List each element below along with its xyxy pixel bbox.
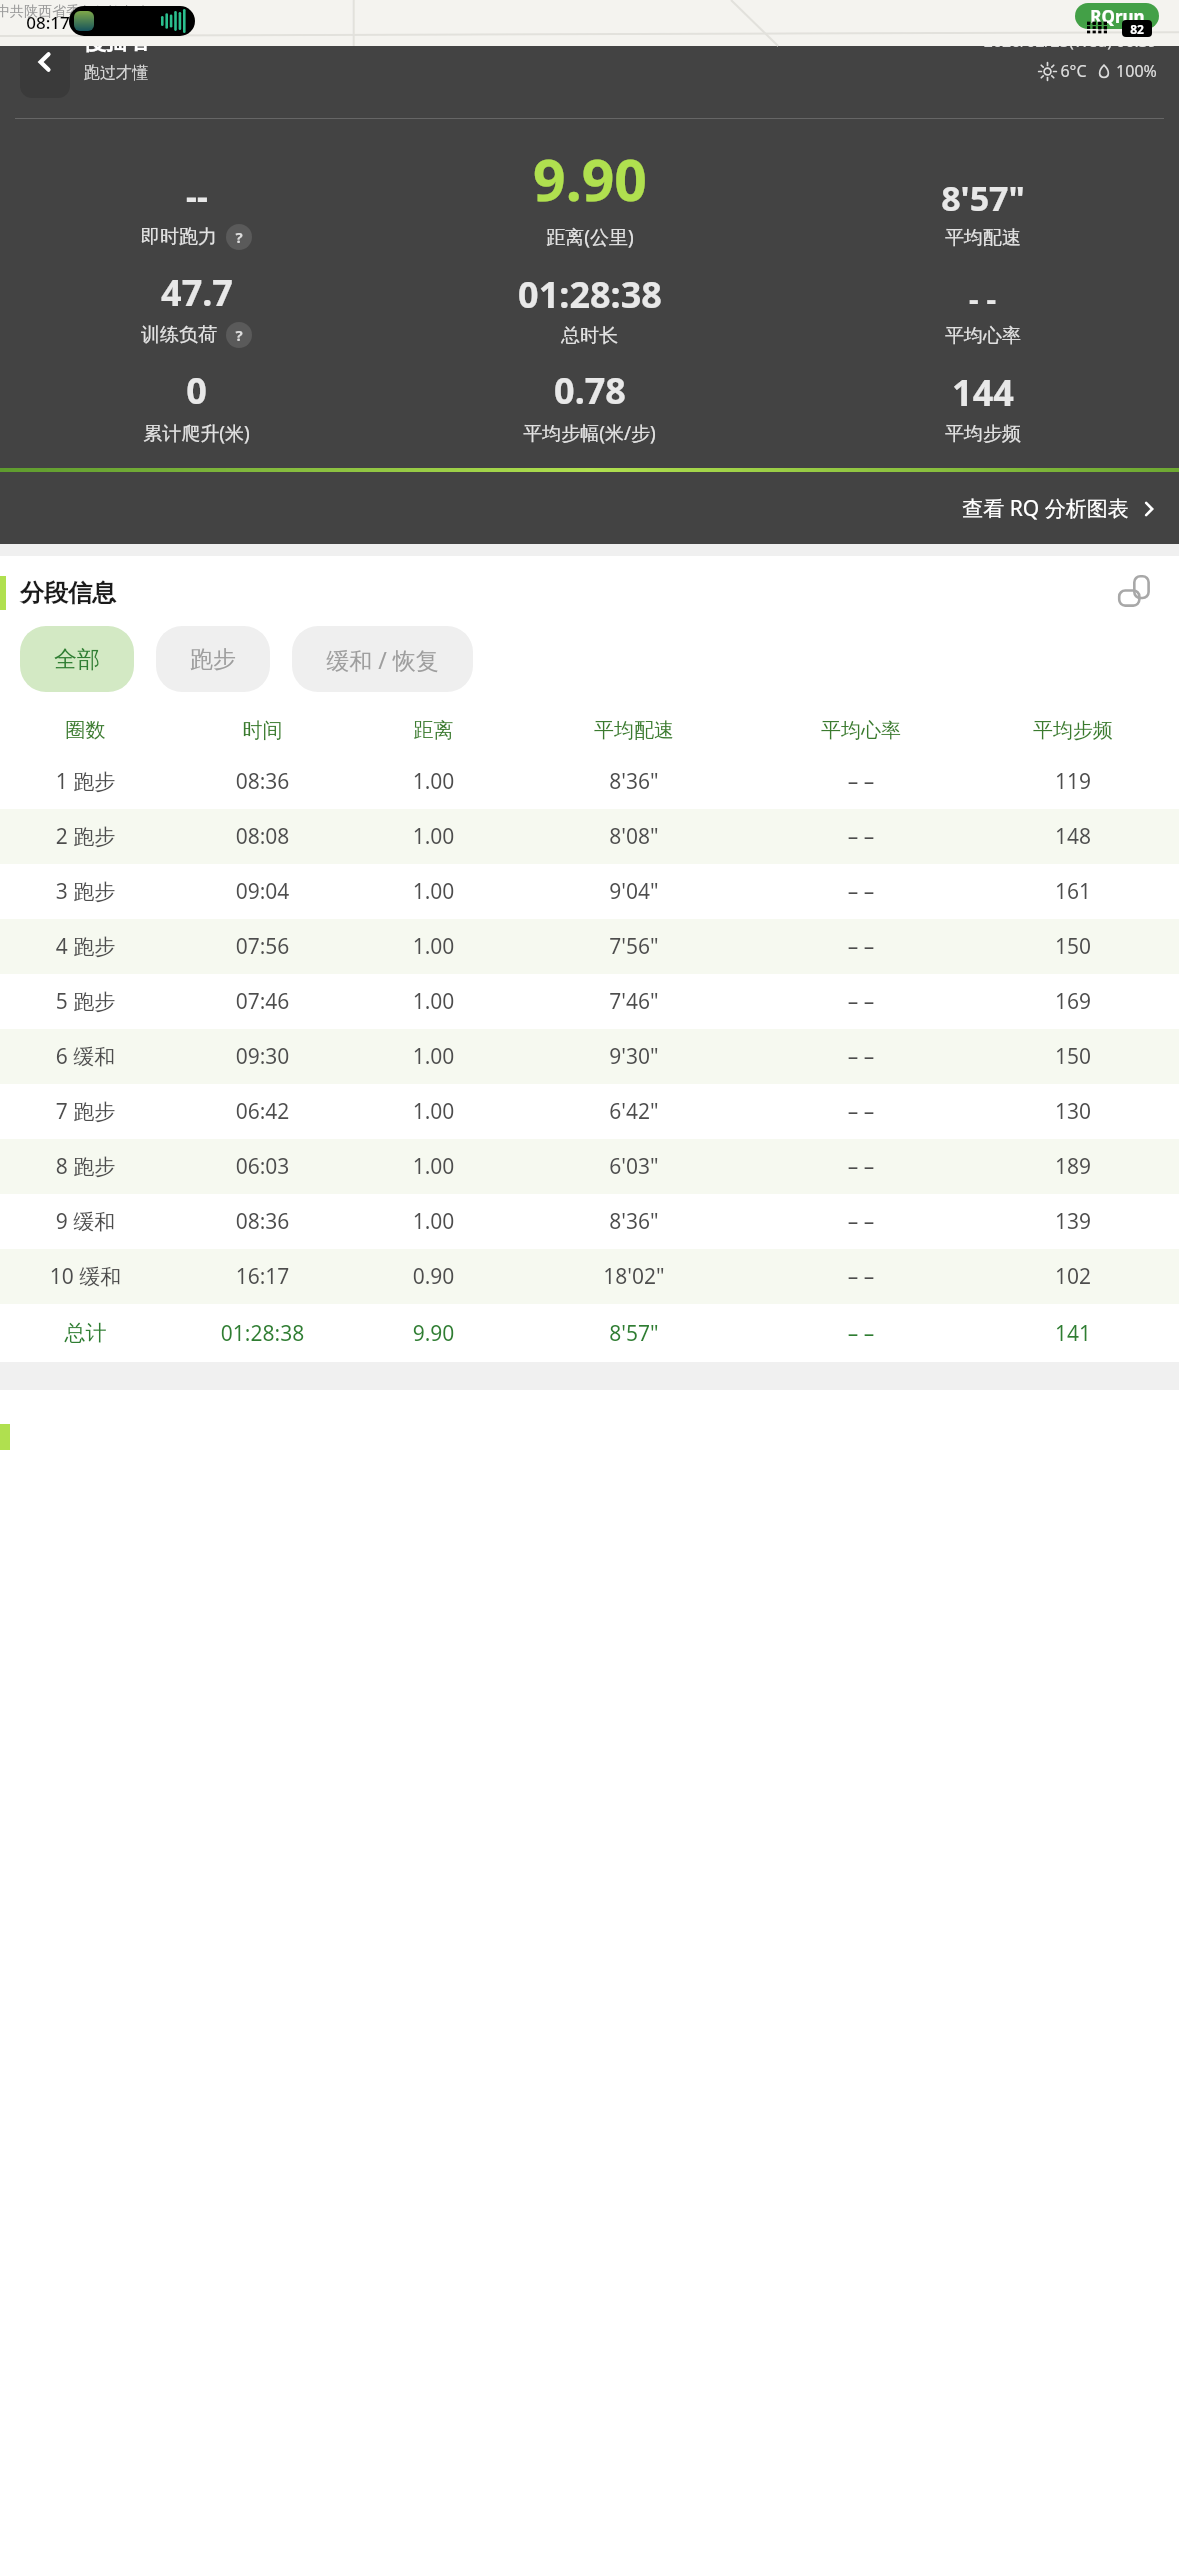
staticText: 0.78 [554, 366, 626, 415]
staticText: 5 跑步 [0, 987, 171, 1016]
button[interactable]: 5 跑步 [0, 974, 1179, 1029]
staticText: 1.00 [354, 1042, 513, 1071]
staticText: 1.00 [354, 822, 513, 851]
staticText: 6'03" [513, 1152, 755, 1181]
staticText: 18'02" [513, 1262, 755, 1291]
staticText: ? [235, 227, 243, 247]
staticText: 1 跑步 [0, 767, 171, 796]
staticText: 平均配速 [513, 718, 755, 743]
staticText: 130 [967, 1097, 1179, 1126]
staticText: 分段信息 [20, 578, 116, 608]
staticText: 4 跑步 [0, 932, 171, 961]
button[interactable]: 8 跑步 [0, 1139, 1179, 1194]
button[interactable]: Rotate screen [1115, 572, 1157, 614]
staticText: 8'57" [513, 1319, 755, 1348]
staticText: 1.00 [354, 1097, 513, 1126]
button[interactable]: 缓和 / 恢复 [292, 626, 473, 692]
staticText: 6°C [1060, 60, 1087, 82]
staticText: 6'42" [513, 1097, 755, 1126]
button[interactable]: Help [226, 322, 252, 348]
staticText: 总时长 [561, 324, 618, 348]
button[interactable]: 10 缓和 [0, 1249, 1179, 1304]
button[interactable]: Now playing [69, 6, 195, 36]
staticText: 累计爬升(米) [143, 420, 250, 446]
staticText: 8'36" [513, 767, 755, 796]
staticText: 139 [967, 1207, 1179, 1236]
staticText: 7'56" [513, 932, 755, 961]
staticText: 189 [967, 1152, 1179, 1181]
staticText: – – [755, 877, 967, 906]
button[interactable]: 6 缓和 [0, 1029, 1179, 1084]
staticText: – – [755, 1207, 967, 1236]
button[interactable]: Back [20, 26, 70, 98]
staticText: 圈数 [0, 718, 171, 743]
staticText: 09:30 [171, 1042, 354, 1071]
staticText: – – [755, 1042, 967, 1071]
staticText: - - [969, 278, 996, 319]
staticText: – – [755, 1152, 967, 1181]
staticText: 8'08" [513, 822, 755, 851]
staticText: – – [755, 932, 967, 961]
staticText: 150 [967, 932, 1179, 961]
staticText: 0 [186, 366, 207, 415]
staticText: 中共陕西省委 [0, 3, 80, 21]
staticText: 08:36 [171, 1207, 354, 1236]
staticText: 查看 RQ 分析图表 [962, 494, 1129, 523]
staticText: – – [755, 1319, 967, 1348]
staticText: 平均步频 [945, 422, 1021, 446]
button[interactable]: RQrun [1075, 3, 1159, 29]
button[interactable]: 1 跑步 [0, 754, 1179, 809]
staticText: 慢摇者 [84, 28, 150, 56]
staticText: 全部 [54, 645, 100, 674]
staticText: 8'57" [941, 175, 1025, 221]
staticText: 2026/02/25(Wed) 06:39 [983, 30, 1157, 52]
staticText: 距离(公里) [546, 224, 634, 250]
button[interactable]: Help [226, 224, 252, 250]
staticText: 平均步幅(米/步) [523, 420, 656, 446]
staticText: 距离 [354, 718, 513, 743]
button[interactable]: 2 跑步 [0, 809, 1179, 864]
staticText: 平均配速 [945, 226, 1021, 250]
staticText: 7'46" [513, 987, 755, 1016]
staticText: 1.00 [354, 987, 513, 1016]
button[interactable]: 跑步 [156, 626, 270, 692]
staticText: – – [755, 1097, 967, 1126]
staticText: – – [755, 767, 967, 796]
button[interactable]: 3 跑步 [0, 864, 1179, 919]
staticText: 7 跑步 [0, 1097, 171, 1126]
staticText: 161 [967, 877, 1179, 906]
staticText: 9'30" [513, 1042, 755, 1071]
button[interactable]: 查看 RQ 分析图表 [0, 472, 1179, 544]
staticText: – – [755, 987, 967, 1016]
staticText: 即时跑力 [141, 225, 217, 249]
staticText: 跑过才懂 [84, 63, 148, 83]
staticText: 82 [1130, 21, 1144, 37]
staticText: 07:56 [171, 932, 354, 961]
staticText: 时间 [171, 718, 354, 743]
button[interactable]: 7 跑步 [0, 1084, 1179, 1139]
staticText: 148 [967, 822, 1179, 851]
staticText: 8'36" [513, 1207, 755, 1236]
staticText: 9.90 [533, 140, 647, 218]
button[interactable]: 9 缓和 [0, 1194, 1179, 1249]
staticText: 0.90 [354, 1262, 513, 1291]
staticText: 150 [967, 1042, 1179, 1071]
staticText: 102 [967, 1262, 1179, 1291]
staticText: 训练负荷 [141, 323, 217, 347]
staticText: 9.90 [354, 1319, 513, 1348]
staticText: 1.00 [354, 877, 513, 906]
staticText: 07:46 [171, 987, 354, 1016]
button[interactable]: 全部 [20, 626, 134, 692]
staticText: 8 跑步 [0, 1152, 171, 1181]
staticText: 大兴善寺院区 [78, 4, 162, 22]
staticText: 1.00 [354, 1207, 513, 1236]
staticText: ? [235, 325, 243, 345]
staticText: 16:17 [171, 1262, 354, 1291]
staticText: 跑步 [190, 645, 236, 674]
staticText: 09:04 [171, 877, 354, 906]
staticText: 1.00 [354, 932, 513, 961]
staticText: 3 跑步 [0, 877, 171, 906]
button[interactable]: 4 跑步 [0, 919, 1179, 974]
staticText: 6 缓和 [0, 1042, 171, 1071]
staticText: RQrun [1090, 5, 1145, 28]
